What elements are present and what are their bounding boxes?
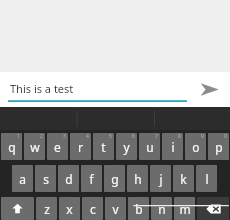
button[interactable]: u — [139, 133, 160, 160]
staticText: c — [90, 201, 96, 217]
staticText: 2 — [40, 133, 43, 140]
button[interactable]: r — [70, 133, 91, 160]
button[interactable]: x — [59, 197, 80, 220]
staticText: r — [78, 139, 83, 155]
button[interactable]: b — [128, 197, 149, 220]
staticText: g — [111, 171, 119, 187]
staticText: t — [101, 139, 106, 155]
staticText: f — [89, 171, 94, 187]
button[interactable]: j — [150, 165, 171, 192]
staticText: x — [66, 201, 73, 217]
staticText: e — [54, 139, 61, 155]
staticText: s — [43, 171, 49, 187]
staticText: u — [146, 139, 154, 155]
button[interactable]: Shift — [1, 197, 34, 220]
button[interactable]: c — [82, 197, 103, 220]
staticText: z — [44, 201, 50, 217]
button[interactable]: n — [151, 197, 172, 220]
button[interactable]: t — [93, 133, 114, 160]
button[interactable]: q — [1, 133, 22, 160]
staticText: 0 — [224, 133, 227, 140]
button[interactable]: This is a test — [0, 72, 188, 107]
staticText: l — [205, 171, 209, 187]
button[interactable]: e — [47, 133, 68, 160]
button[interactable]: k — [173, 165, 194, 192]
staticText: b — [135, 201, 143, 217]
button[interactable]: a — [12, 165, 33, 192]
staticText: 6 — [132, 133, 135, 140]
button[interactable]: l — [196, 165, 217, 192]
staticText: This is a test — [10, 81, 74, 96]
staticText: h — [134, 171, 142, 187]
staticText: o — [192, 139, 200, 155]
staticText: q — [8, 139, 16, 155]
staticText: i — [171, 139, 175, 155]
button[interactable]: y — [116, 133, 137, 160]
button[interactable]: f — [81, 165, 102, 192]
staticText: 9 — [201, 133, 204, 140]
staticText: n — [158, 201, 166, 217]
button[interactable]: m — [174, 197, 195, 220]
staticText: d — [65, 171, 73, 187]
button[interactable]: i — [162, 133, 183, 160]
staticText: 7 — [155, 133, 158, 140]
staticText: 4 — [86, 133, 89, 140]
button[interactable]: p — [208, 133, 229, 160]
button[interactable]: g — [104, 165, 125, 192]
button[interactable]: w — [24, 133, 45, 160]
staticText: v — [112, 201, 119, 217]
staticText: a — [19, 171, 26, 187]
button[interactable]: v — [105, 197, 126, 220]
button[interactable]: o — [185, 133, 206, 160]
staticText: j — [159, 171, 163, 187]
button[interactable]: z — [36, 197, 57, 220]
staticText: w — [30, 139, 40, 155]
staticText: 5 — [109, 133, 112, 140]
staticText: y — [123, 139, 130, 155]
staticText: m — [179, 201, 191, 217]
staticText: p — [215, 139, 223, 155]
button[interactable]: s — [35, 165, 56, 192]
button[interactable]: Send — [188, 72, 230, 107]
button[interactable]: d — [58, 165, 79, 192]
staticText: 8 — [178, 133, 181, 140]
staticText: 1 — [17, 133, 20, 140]
staticText: 3 — [63, 133, 66, 140]
button[interactable]: Delete — [197, 197, 229, 220]
button[interactable]: h — [127, 165, 148, 192]
staticText: k — [180, 171, 187, 187]
